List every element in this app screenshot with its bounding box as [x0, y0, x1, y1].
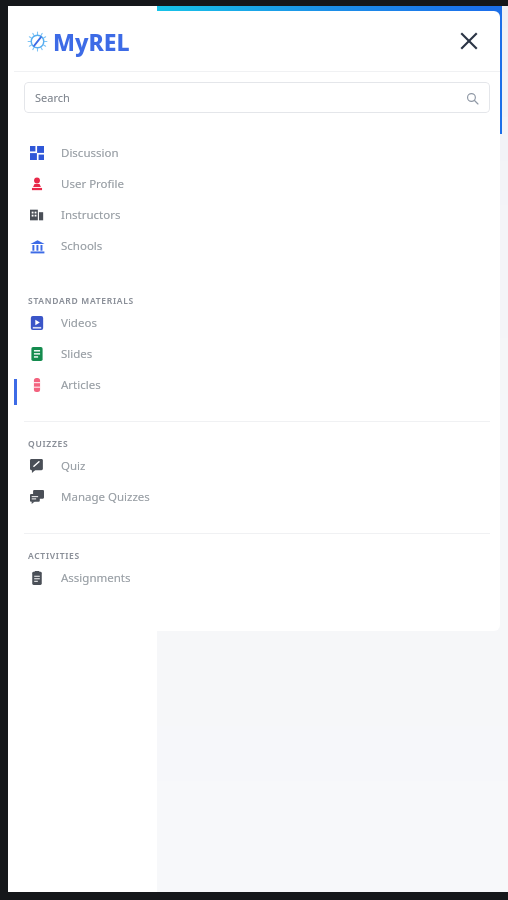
button[interactable]: Close: [452, 24, 486, 58]
staticText: Slides: [61, 346, 93, 362]
staticText: MyREL: [53, 26, 130, 57]
staticText: Quiz: [61, 458, 86, 474]
button[interactable]: Quiz: [14, 457, 500, 488]
staticText: Assignments: [61, 570, 131, 586]
button[interactable]: User Profile: [14, 175, 500, 206]
staticText: QUIZZES: [28, 438, 69, 450]
button[interactable]: Articles: [14, 376, 500, 407]
staticText: ACTIVITIES: [28, 550, 80, 562]
staticText: Discussion: [61, 145, 119, 161]
staticText: Manage Quizzes: [61, 489, 150, 505]
button[interactable]: Instructors: [14, 206, 500, 237]
button[interactable]: Manage Quizzes: [14, 488, 500, 519]
button[interactable]: Search: [24, 82, 490, 113]
button[interactable]: Discussion: [14, 144, 500, 175]
staticText: Videos: [61, 315, 97, 331]
button[interactable]: Slides: [14, 345, 500, 376]
staticText: User Profile: [61, 176, 124, 192]
staticText: Schools: [61, 238, 103, 254]
button[interactable]: Schools: [14, 237, 500, 268]
staticText: Instructors: [61, 207, 121, 223]
button[interactable]: Assignments: [14, 569, 500, 600]
button[interactable]: Videos: [14, 314, 500, 345]
staticText: Search: [35, 90, 70, 105]
staticText: STANDARD MATERIALS: [28, 295, 134, 307]
button[interactable]: MyREL: [28, 26, 130, 57]
staticText: Articles: [61, 377, 101, 393]
